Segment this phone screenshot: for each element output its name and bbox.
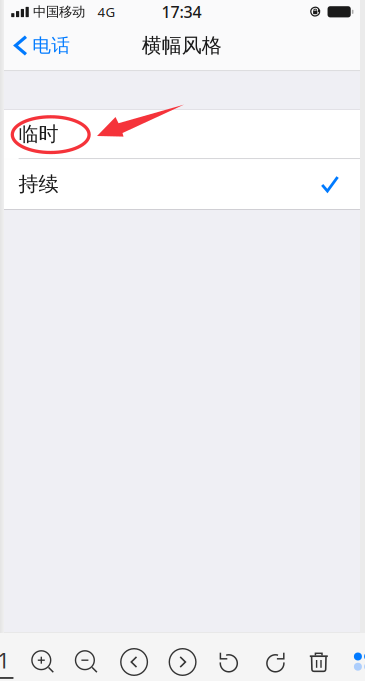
staticText: 临时 (19, 122, 59, 146)
button[interactable]: Rotate right (265, 652, 286, 673)
button[interactable]: 持续 (4, 159, 360, 209)
staticText: 中国移动 (33, 4, 85, 20)
staticText: 持续 (19, 172, 59, 196)
staticText: 17:34 (161, 1, 201, 22)
staticText: 电话 (32, 34, 70, 57)
button[interactable]: 电话 (6, 23, 80, 67)
button[interactable]: Zoom in (32, 651, 54, 673)
button[interactable]: Delete (309, 652, 329, 672)
button[interactable]: More options (354, 652, 365, 671)
button[interactable]: 临时 (4, 110, 360, 158)
button[interactable]: Next page (169, 648, 196, 676)
staticText: 1 (0, 646, 9, 674)
button[interactable]: Page 1 (0, 647, 15, 677)
button[interactable]: Previous page (120, 648, 148, 676)
staticText: 横幅风格 (142, 33, 222, 58)
staticText: 4G (97, 3, 115, 21)
button[interactable]: Rotate left (218, 652, 239, 673)
button[interactable]: Zoom out (75, 651, 97, 673)
